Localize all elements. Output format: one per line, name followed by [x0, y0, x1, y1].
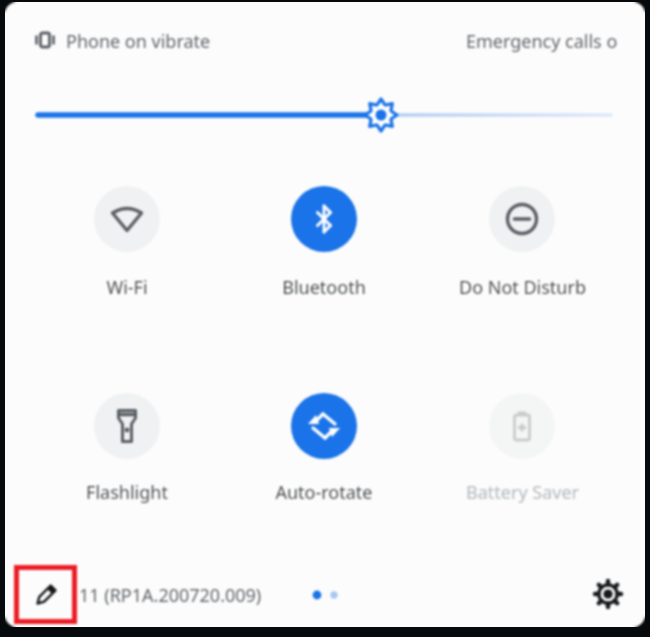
- staticText: Emergency calls o: [466, 29, 618, 54]
- staticText: Wi-Fi: [106, 275, 148, 299]
- button[interactable]: [489, 393, 555, 459]
- button[interactable]: [291, 186, 357, 252]
- button[interactable]: [94, 186, 160, 252]
- staticText: Auto-rotate: [275, 480, 373, 504]
- button[interactable]: [14, 565, 77, 624]
- staticText: Flashlight: [86, 480, 168, 504]
- staticText: Phone on vibrate: [66, 29, 211, 54]
- staticText: 11 (RP1A.200720.009): [79, 583, 262, 608]
- button[interactable]: [588, 574, 628, 614]
- staticText: Do Not Disturb: [459, 275, 586, 299]
- button[interactable]: [94, 393, 160, 459]
- button[interactable]: [489, 186, 555, 252]
- staticText: Bluetooth: [282, 275, 366, 299]
- staticText: Battery Saver: [466, 480, 579, 504]
- button[interactable]: [291, 393, 357, 459]
